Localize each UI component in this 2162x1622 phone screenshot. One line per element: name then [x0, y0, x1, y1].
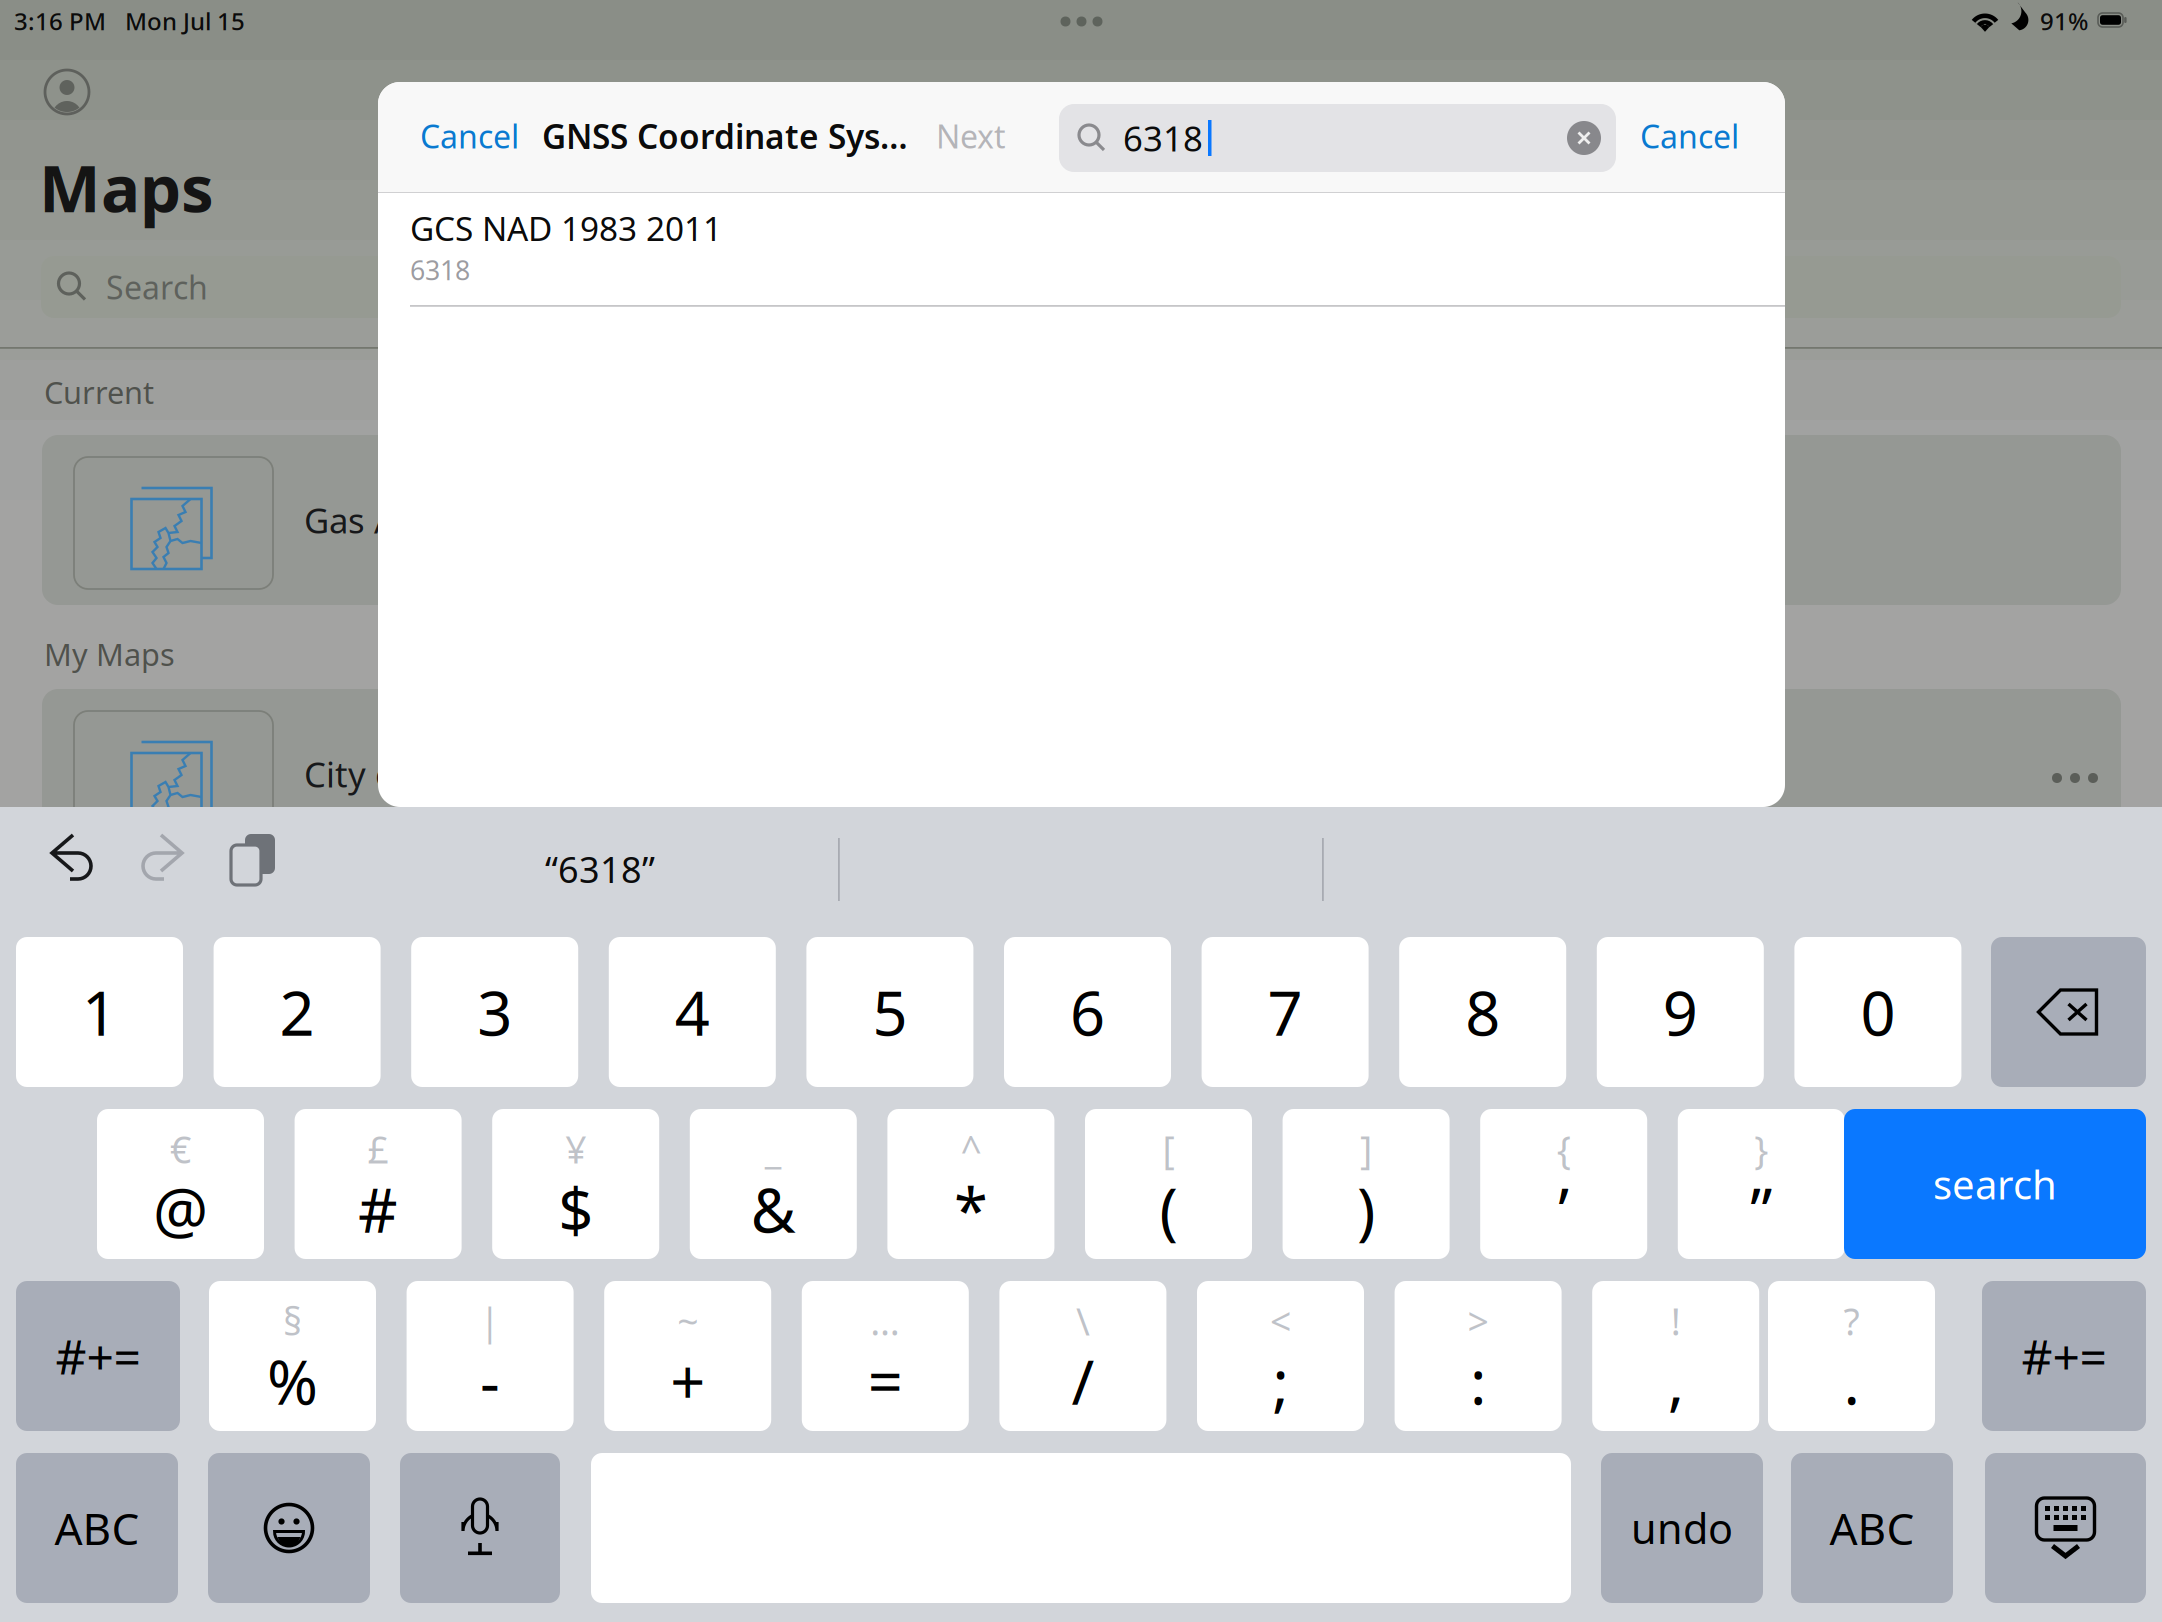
button[interactable]: + — [604, 1281, 771, 1431]
staticText: Maps — [39, 144, 214, 230]
button[interactable]: Search — [41, 256, 2121, 318]
staticText: City o — [304, 751, 396, 797]
staticText: € — [170, 1124, 191, 1174]
button[interactable]: 7 — [1202, 937, 1369, 1087]
button[interactable]: ; — [1197, 1281, 1364, 1431]
button[interactable]: ) — [1283, 1109, 1450, 1259]
button[interactable]: Redo — [120, 833, 186, 895]
staticText: ^ — [960, 1124, 981, 1174]
staticText: 6 — [1070, 971, 1105, 1053]
staticText: Next — [936, 115, 1006, 157]
button[interactable]: Cancel — [420, 105, 544, 167]
button[interactable]: - — [407, 1281, 574, 1431]
button[interactable]: 1 — [16, 937, 183, 1087]
button[interactable]: # — [295, 1109, 462, 1259]
button[interactable]: 4 — [609, 937, 776, 1087]
button[interactable]: search — [1844, 1109, 2146, 1259]
staticText: ? — [1843, 1296, 1859, 1346]
button[interactable]: Hide keyboard — [1985, 1453, 2146, 1603]
staticText: ( — [1159, 1168, 1177, 1250]
button[interactable]: @ — [97, 1109, 264, 1259]
button[interactable]: $ — [492, 1109, 659, 1259]
staticText: 7 — [1268, 971, 1303, 1053]
button[interactable]: 6 — [1004, 937, 1171, 1087]
staticText: _ — [765, 1124, 782, 1174]
button[interactable]: Gas A — [42, 435, 2121, 605]
staticText: + — [670, 1340, 705, 1422]
button[interactable]: 8 — [1399, 937, 1566, 1087]
staticText: 91% — [2040, 5, 2088, 37]
staticText: 5 — [872, 971, 907, 1053]
button[interactable]: = — [802, 1281, 969, 1431]
staticText: . — [1843, 1340, 1859, 1422]
button[interactable]: 9 — [1597, 937, 1764, 1087]
button[interactable]: ABC — [1791, 1453, 1953, 1603]
button[interactable]: : — [1395, 1281, 1562, 1431]
button[interactable]: undo — [1601, 1453, 1763, 1603]
staticText: 6318 — [410, 252, 470, 288]
button[interactable]: % — [209, 1281, 376, 1431]
staticText: { — [1557, 1124, 1571, 1174]
staticText: My Maps — [44, 634, 175, 674]
staticText: Search — [106, 266, 208, 308]
button[interactable]: #+= — [16, 1281, 180, 1431]
staticText: $ — [558, 1168, 593, 1250]
button[interactable]: Clear text — [1562, 116, 1606, 160]
staticText: | — [480, 1296, 501, 1346]
button[interactable]: 0 — [1794, 937, 1961, 1087]
button[interactable]: Account — [45, 70, 89, 114]
button[interactable]: ’ — [1480, 1109, 1647, 1259]
staticText: 1 — [82, 971, 117, 1053]
button[interactable]: GCS NAD 1983 2011 — [378, 193, 1785, 307]
staticText: Gas A — [304, 497, 396, 543]
button[interactable]: More options — [2045, 756, 2105, 800]
button[interactable]: ( — [1085, 1109, 1252, 1259]
button[interactable]: Delete — [1991, 937, 2146, 1087]
staticText: Cancel — [420, 115, 519, 157]
button[interactable]: Cancel — [1640, 105, 1764, 167]
button[interactable]: #+= — [1982, 1281, 2146, 1431]
staticText: ’ — [1558, 1168, 1569, 1250]
staticText: / — [1071, 1340, 1094, 1422]
staticText: “6318” — [545, 845, 655, 893]
button[interactable]: Paste — [231, 834, 287, 894]
button[interactable]: . — [1768, 1281, 1935, 1431]
staticText: 3:16 PM — [14, 5, 106, 37]
button[interactable]: Dictation — [400, 1453, 560, 1603]
button[interactable]: ” — [1678, 1109, 1845, 1259]
staticText: search — [1933, 1157, 2057, 1210]
staticText: £ — [368, 1124, 389, 1174]
staticText: § — [283, 1296, 302, 1346]
button[interactable]: & — [690, 1109, 857, 1259]
staticText: ” — [1750, 1168, 1772, 1250]
button[interactable]: Emoji — [208, 1453, 370, 1603]
button[interactable]: * — [887, 1109, 1054, 1259]
staticText: 8 — [1465, 971, 1500, 1053]
staticText: … — [870, 1296, 900, 1346]
staticText: #+= — [55, 1324, 140, 1388]
button[interactable]: 3 — [411, 937, 578, 1087]
button[interactable]: Next — [936, 105, 1026, 167]
staticText: ~ — [677, 1296, 698, 1346]
staticText: # — [358, 1168, 398, 1250]
staticText: , — [1668, 1340, 1684, 1422]
staticText: ! — [1671, 1296, 1681, 1346]
button[interactable]: Undo — [48, 833, 114, 895]
staticText: * — [954, 1168, 988, 1250]
staticText: & — [751, 1168, 796, 1250]
staticText: 0 — [1860, 971, 1895, 1053]
staticText: = — [868, 1340, 903, 1422]
button[interactable]: 5 — [806, 937, 973, 1087]
button[interactable]: ABC — [16, 1453, 178, 1603]
staticText: #+= — [2021, 1324, 2106, 1388]
staticText: ) — [1357, 1168, 1375, 1250]
button[interactable]: 2 — [214, 937, 381, 1087]
staticText: : — [1470, 1340, 1486, 1422]
button[interactable]: , — [1592, 1281, 1759, 1431]
staticText: Cancel — [1640, 115, 1739, 157]
staticText: 6318 — [1123, 115, 1203, 161]
button[interactable]: / — [999, 1281, 1166, 1431]
button[interactable]: City o — [42, 689, 2121, 859]
staticText: ABC — [54, 1499, 139, 1557]
